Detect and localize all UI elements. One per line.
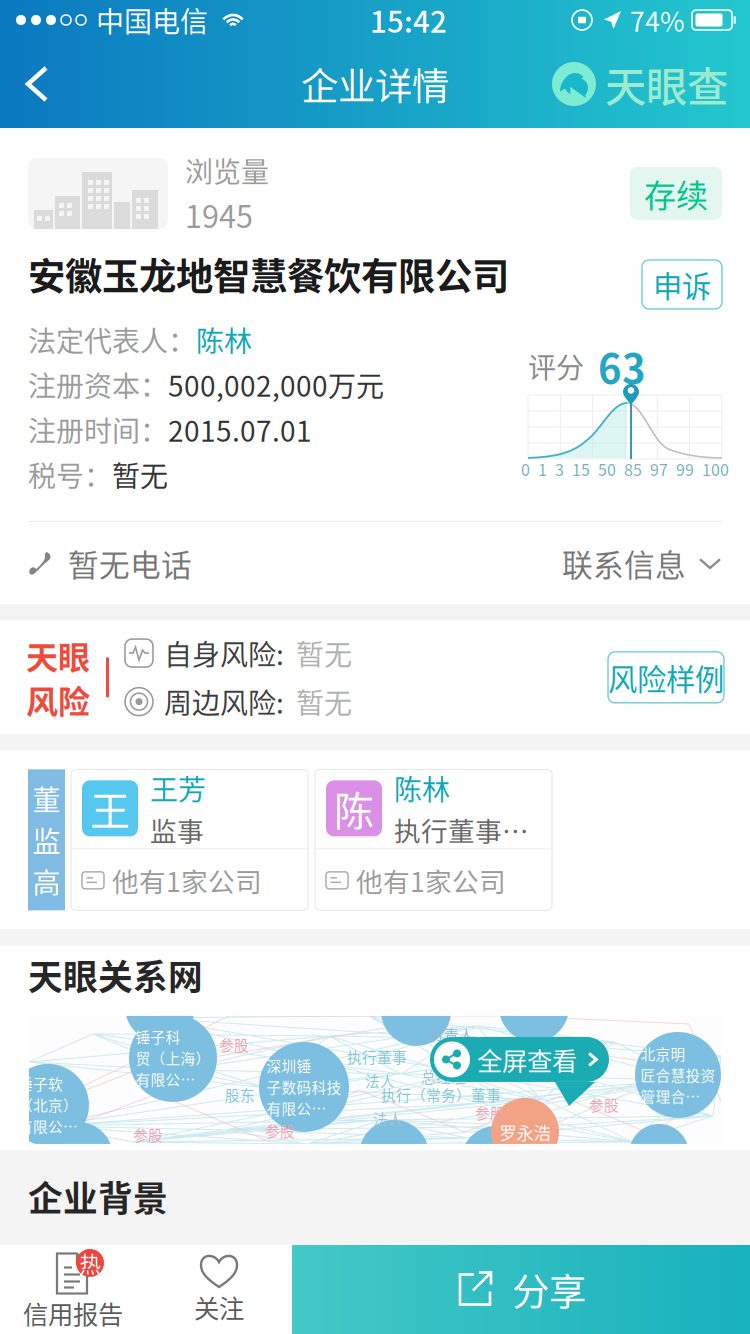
staticText: 自身风险: <box>164 633 284 673</box>
staticText: 法人 <box>435 1044 465 1065</box>
staticText: 99 <box>676 457 694 481</box>
staticText: 天眼查 <box>605 54 728 114</box>
staticText: 热 <box>79 1247 100 1278</box>
staticText: 申诉 <box>653 263 711 306</box>
staticText: 关注 <box>194 1289 244 1325</box>
staticText: 暂无 <box>296 681 352 722</box>
staticText: 负责人 <box>429 1024 474 1045</box>
staticText: 暂无 <box>112 454 168 495</box>
staticText: 15 <box>572 457 590 481</box>
button[interactable]: 返回 <box>0 49 74 119</box>
staticText: 3 <box>555 457 564 481</box>
staticText: 50 <box>598 457 616 481</box>
staticText: 监事 <box>150 810 204 849</box>
staticText: 参股 <box>133 1124 163 1145</box>
staticText: 天眼 <box>26 632 90 678</box>
staticText: 税号： <box>28 454 112 495</box>
staticText: 63 <box>598 337 646 395</box>
staticText: 74% <box>630 1 685 39</box>
staticText: 王 <box>90 779 130 837</box>
staticText: 暂无电话 <box>68 541 192 585</box>
staticText: 1 <box>538 457 547 481</box>
staticText: 罗永浩 <box>499 1119 550 1144</box>
staticText: 分享 <box>512 1262 586 1317</box>
staticText: 存续 <box>644 170 708 217</box>
staticText: 深圳锤 子数码科技 有限公… <box>266 1055 341 1119</box>
staticText: 陈 <box>334 779 374 837</box>
staticText: 参股 <box>475 1102 505 1123</box>
staticText: 他有1家公司 <box>112 861 262 900</box>
staticText: 风险样例 <box>608 656 724 699</box>
staticText: 2015.07.01 <box>168 409 312 450</box>
staticText: 法定代表人： <box>28 319 196 360</box>
button[interactable]: 陈 <box>315 769 552 910</box>
staticText: 天眼关系网 <box>28 950 203 1000</box>
staticText: 他有1家公司 <box>356 861 506 900</box>
staticText: 参股 <box>589 1094 619 1115</box>
staticText: 执行（常务）董事 <box>381 1084 501 1105</box>
button[interactable]: 暂无电话 <box>28 522 722 604</box>
staticText: 参股 <box>265 1120 295 1141</box>
staticText: 全屏查看 <box>477 1041 577 1078</box>
staticText: 法人 <box>373 1108 403 1129</box>
staticText: 执行董事 <box>347 1046 407 1067</box>
staticText: 法人 <box>365 1070 395 1091</box>
staticText: 总经理 <box>421 1066 466 1087</box>
button[interactable]: 全屏查看 <box>430 1037 609 1082</box>
button[interactable]: 热 <box>0 1245 146 1334</box>
staticText: 参股 <box>219 1034 249 1055</box>
staticText: 高 <box>32 861 60 902</box>
staticText: 注册时间： <box>28 409 168 450</box>
button[interactable]: 王 <box>71 769 308 910</box>
staticText: 董 <box>32 778 60 818</box>
staticText: 执行董事兼… <box>394 810 533 849</box>
staticText: 评分 <box>528 346 584 386</box>
staticText: 监 <box>32 820 60 860</box>
staticText: 中国电信 <box>96 0 208 40</box>
staticText: 锤子软 （北京） 有限公… <box>18 1073 78 1137</box>
staticText: 风险 <box>26 676 90 723</box>
staticText: 0 <box>521 457 530 481</box>
staticText: 周边风险: <box>164 681 284 722</box>
staticText: 企业详情 <box>301 57 449 111</box>
staticText: 浏览量 <box>185 150 269 190</box>
button[interactable]: 申诉 <box>642 260 722 309</box>
button[interactable]: 分享 <box>292 1245 750 1334</box>
staticText: 北京明 匠合慧投资 管理合… <box>640 1043 715 1107</box>
staticText: 1945 <box>185 192 253 237</box>
staticText: 信用报告 <box>23 1295 123 1331</box>
staticText: 企业背景 <box>28 1171 168 1221</box>
staticText: 陈林 <box>196 319 252 360</box>
staticText: 安徽玉龙地智慧餐饮有限公司 <box>28 247 509 301</box>
staticText: 联系信息 <box>562 541 686 585</box>
staticText: 锤子科 贸（上海） 有限公… <box>135 1026 210 1090</box>
staticText: 注册资本： <box>28 364 168 405</box>
button[interactable]: 风险样例 <box>608 652 724 703</box>
staticText: 陈林 <box>394 768 450 808</box>
staticText: 500,002,000万元 <box>168 364 384 405</box>
staticText: 王芳 <box>150 768 206 808</box>
staticText: 97 <box>650 457 668 481</box>
staticText: 暂无 <box>296 633 352 673</box>
staticText: 100 <box>702 457 729 481</box>
staticText: 15:42 <box>370 0 447 41</box>
staticText: 股东 <box>225 1084 255 1105</box>
button[interactable]: 天眼查首页 <box>552 49 750 119</box>
staticText: 85 <box>624 457 642 481</box>
button[interactable]: 关注 <box>146 1245 292 1334</box>
